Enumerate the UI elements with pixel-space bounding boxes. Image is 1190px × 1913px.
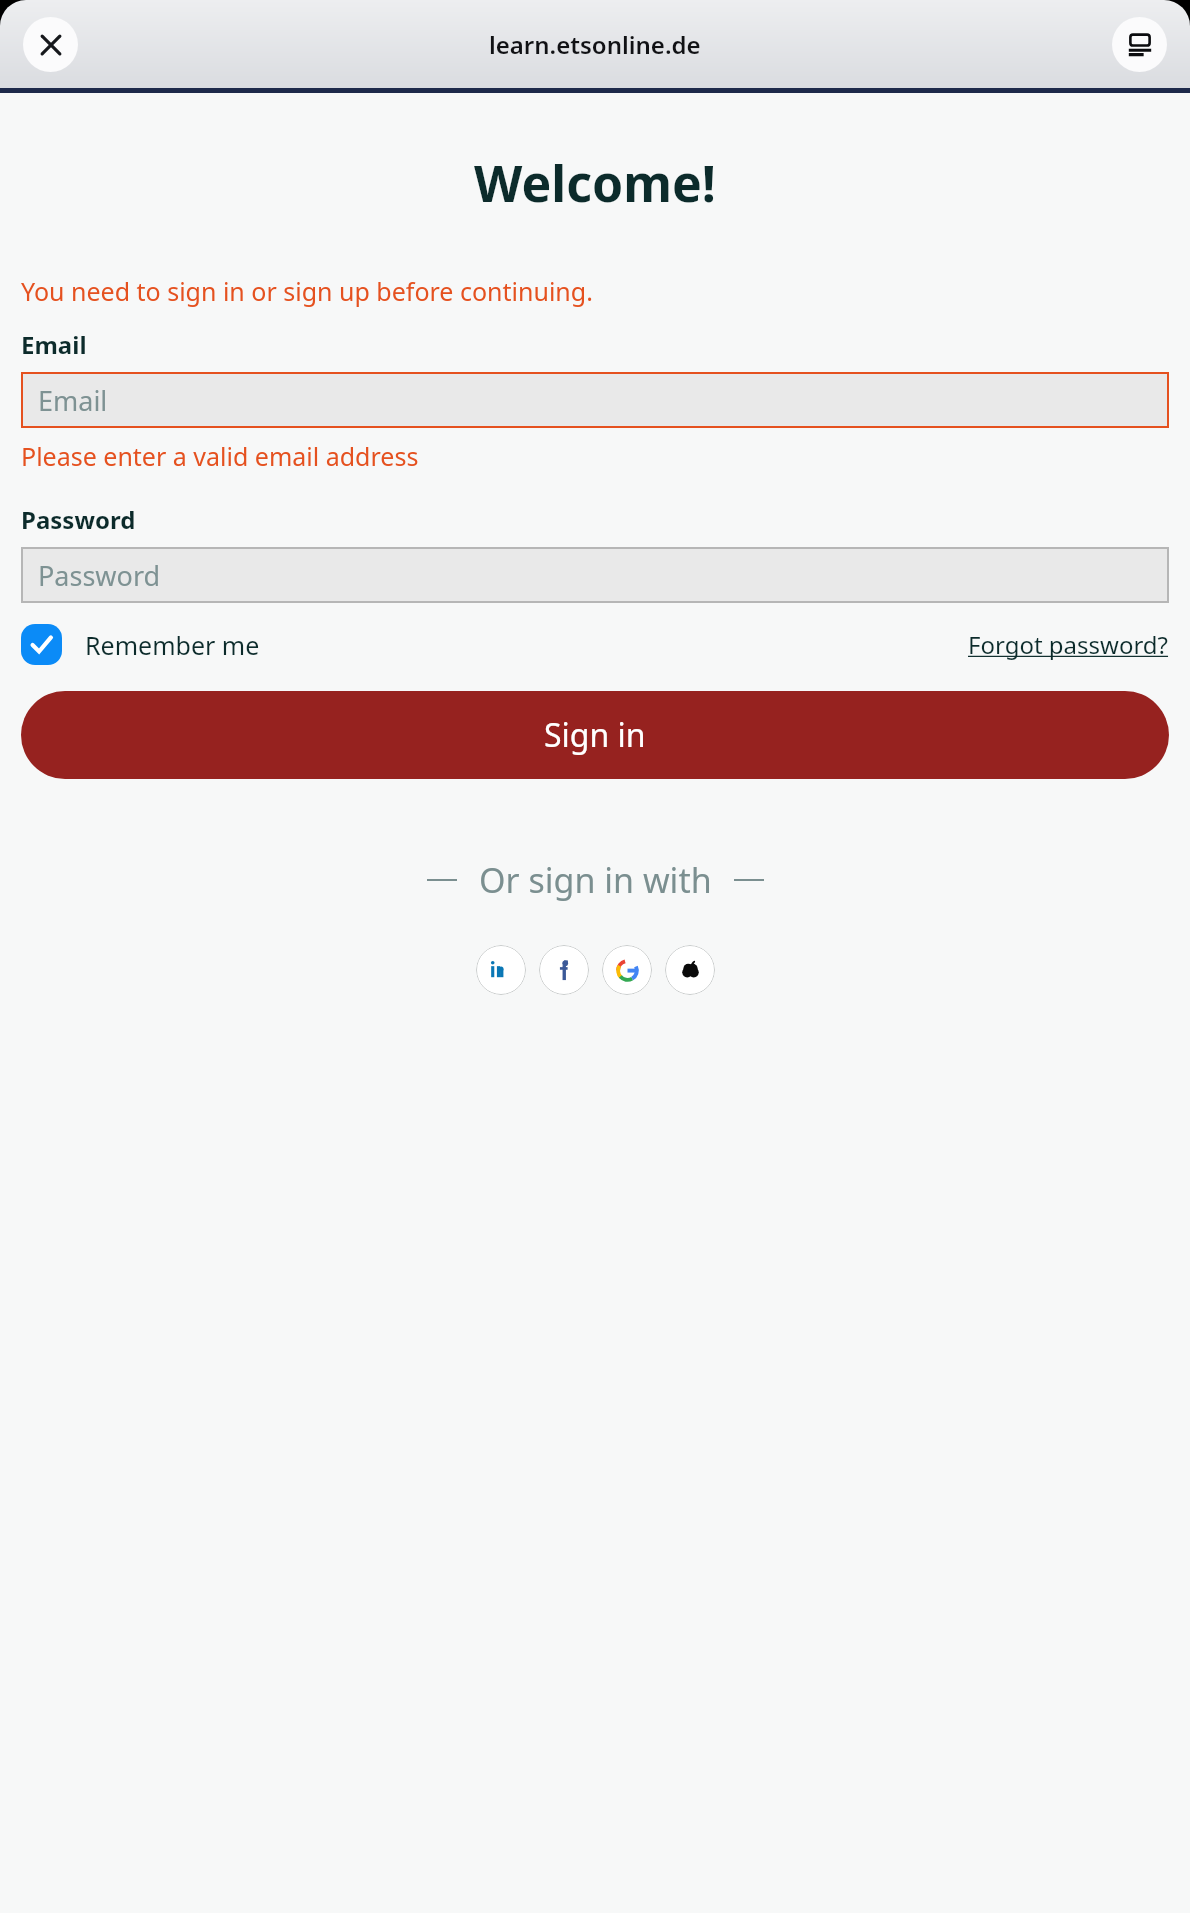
staticText: Remember me (85, 628, 260, 662)
button[interactable]: Sign in (21, 691, 1169, 779)
button[interactable]: Password (21, 547, 1169, 603)
button[interactable]: Remember me (21, 624, 260, 665)
staticText: Please enter a valid email address (21, 439, 419, 473)
button[interactable]: Reader mode (1112, 17, 1167, 72)
staticText: Email (21, 328, 87, 361)
staticText: learn.etsonline.de (489, 28, 701, 61)
staticText: Forgot password? (968, 628, 1169, 661)
button[interactable]: Forgot password? (968, 628, 1169, 661)
button[interactable]: Facebook sign in (539, 945, 589, 995)
staticText: Email (38, 382, 108, 419)
staticText: Welcome! (21, 149, 1169, 217)
staticText: Password (21, 503, 136, 536)
button[interactable]: Close (23, 17, 78, 72)
button[interactable]: Email (21, 372, 1169, 428)
staticText: Sign in (544, 713, 646, 757)
button[interactable]: Google sign in (602, 945, 652, 995)
button[interactable]: Apple sign in (665, 945, 715, 995)
button[interactable]: LinkedIn sign in (476, 945, 526, 995)
staticText: You need to sign in or sign up before co… (21, 274, 593, 308)
staticText: Password (38, 557, 161, 594)
staticText: Or sign in with (479, 857, 712, 903)
